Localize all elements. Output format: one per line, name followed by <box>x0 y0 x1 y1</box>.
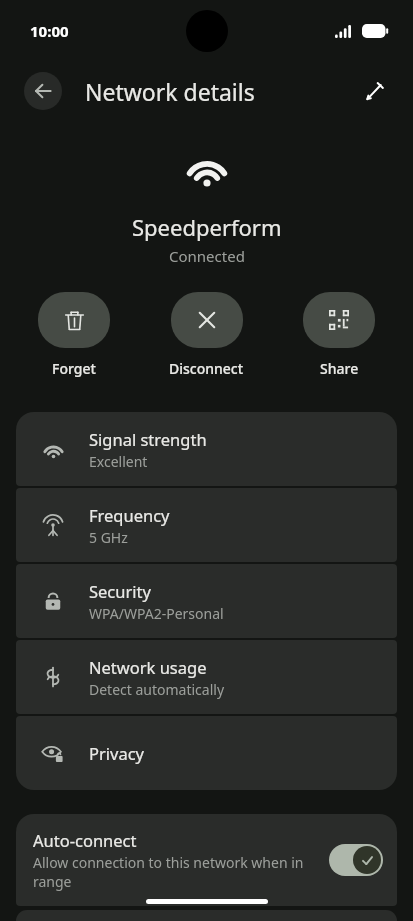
button[interactable]: Edit <box>355 71 395 111</box>
staticText: Network details <box>85 76 255 107</box>
staticText: Signal strength <box>89 428 207 450</box>
staticText: 10:00 <box>30 21 69 41</box>
staticText: Auto-connect <box>33 829 137 851</box>
staticText: WPA/WPA2-Personal <box>89 604 224 623</box>
staticText: Frequency <box>89 504 170 526</box>
staticText: Network usage <box>89 656 207 678</box>
staticText: Disconnect <box>169 359 244 378</box>
staticText: Forget <box>52 359 96 378</box>
staticText: Detect automatically <box>89 680 225 699</box>
staticText: 5 GHz <box>89 528 128 547</box>
button[interactable]: Back <box>24 72 62 110</box>
button[interactable]: Auto-connect <box>16 814 397 906</box>
staticText: Connected <box>169 246 245 266</box>
staticText: Share <box>320 359 359 378</box>
staticText: Allow connection to this network when in… <box>33 853 321 891</box>
button[interactable]: Share <box>303 292 375 378</box>
button[interactable]: Forget <box>38 292 110 378</box>
button[interactable]: Network usage <box>16 640 397 714</box>
staticText: Excellent <box>89 452 148 471</box>
button[interactable]: Frequency <box>16 488 397 562</box>
staticText: Privacy <box>89 742 145 764</box>
button[interactable]: Security <box>16 564 397 638</box>
staticText: Security <box>89 580 151 602</box>
button[interactable]: Privacy <box>16 716 397 790</box>
button[interactable]: Disconnect <box>169 292 244 378</box>
staticText: Speedperform <box>132 212 282 242</box>
button[interactable]: Signal strength <box>16 412 397 486</box>
button[interactable]: Auto-connect toggle <box>329 844 383 876</box>
